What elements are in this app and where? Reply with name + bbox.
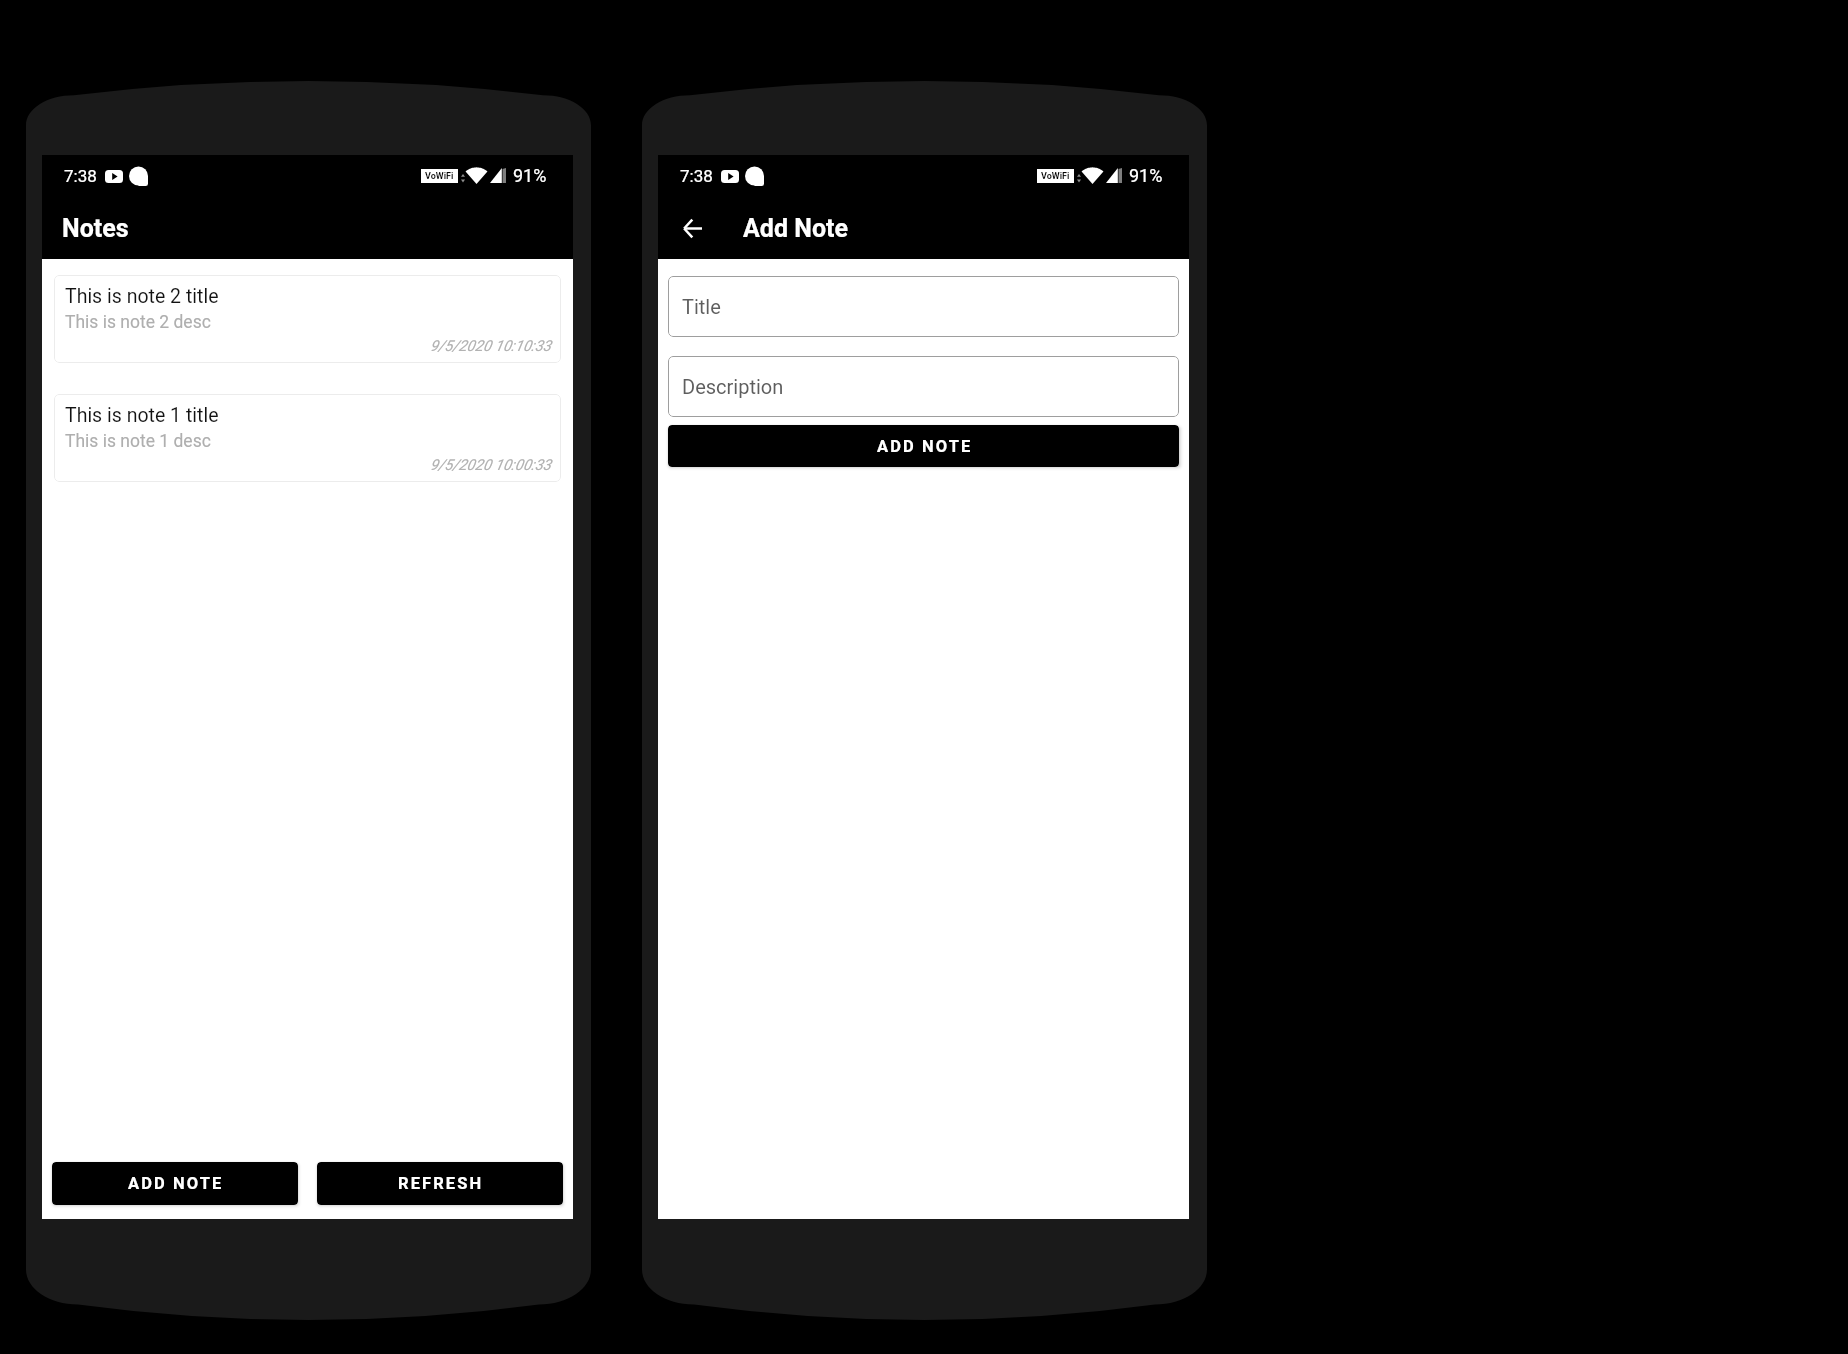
button[interactable]: Back	[670, 206, 714, 250]
staticText: Title	[682, 295, 721, 318]
staticText: 9/5/2020 10:00:33	[65, 456, 551, 474]
staticText: VoWiFi	[1041, 171, 1070, 182]
button[interactable]: REFRESH	[317, 1162, 563, 1205]
staticText: 9/5/2020 10:10:33	[65, 337, 551, 355]
staticText: Description	[682, 375, 784, 398]
button[interactable]: Description	[668, 356, 1179, 417]
staticText: 7:38	[64, 166, 97, 186]
button[interactable]: Title	[668, 276, 1179, 337]
staticText: This is note 1 desc	[65, 431, 211, 452]
staticText: VoWiFi	[425, 171, 454, 182]
button[interactable]: ADD NOTE	[52, 1162, 298, 1205]
staticText: 91%	[513, 165, 547, 186]
staticText: ADD NOTE	[877, 437, 973, 456]
staticText: REFRESH	[398, 1174, 484, 1193]
button[interactable]: This is note 2 title	[54, 275, 561, 363]
staticText: Notes	[62, 214, 129, 243]
staticText: ADD NOTE	[128, 1174, 224, 1193]
staticText: 91%	[1129, 165, 1163, 186]
staticText: This is note 2 desc	[65, 312, 211, 333]
button[interactable]: ADD NOTE	[668, 425, 1179, 467]
staticText: 7:38	[680, 166, 713, 186]
button[interactable]: This is note 1 title	[54, 394, 561, 482]
staticText: Add Note	[743, 214, 849, 243]
staticText: This is note 1 title	[65, 404, 219, 427]
staticText: This is note 2 title	[65, 285, 219, 308]
